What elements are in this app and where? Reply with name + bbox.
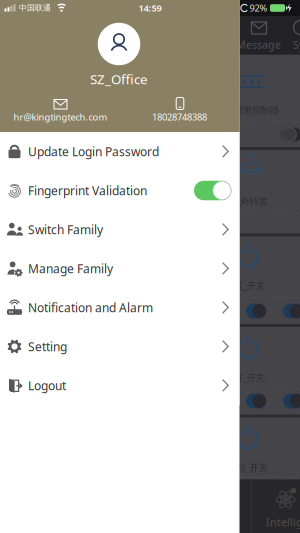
button[interactable]: Setting xyxy=(0,327,239,366)
staticText: Switch Family xyxy=(28,221,103,237)
staticText: Setting xyxy=(28,338,67,354)
button[interactable]: Switch Family xyxy=(0,210,239,249)
staticText: 14:59 xyxy=(138,2,161,14)
staticText: Logout xyxy=(28,377,66,393)
staticText: Update Login Password xyxy=(28,143,159,159)
staticText: SZ_Office xyxy=(90,70,148,88)
staticText: 中国联通 xyxy=(19,3,51,13)
staticText: Sys xyxy=(293,37,300,52)
button[interactable]: Notification and Alarm xyxy=(0,288,239,327)
staticText: 红外转发 xyxy=(231,196,267,207)
button[interactable]: Logout xyxy=(0,366,239,405)
staticText: Manage Family xyxy=(28,260,113,276)
staticText: Fingerprint Validation xyxy=(28,182,147,198)
staticText: 与_开关 xyxy=(236,461,267,474)
button[interactable]: Update Login Password xyxy=(0,132,239,171)
staticText: 92% xyxy=(249,2,267,14)
staticText: Message xyxy=(236,37,281,52)
staticText: Notification and Alarm xyxy=(28,299,153,315)
staticText: 灯_开关 xyxy=(234,371,265,384)
staticText: 灯_开关 xyxy=(234,279,265,292)
button[interactable]: Manage Family xyxy=(0,249,239,288)
button[interactable]: Close menu xyxy=(239,0,300,533)
staticText: 宽带控制器 xyxy=(234,105,279,116)
staticText: Intelligent xyxy=(266,515,300,529)
button[interactable]: Fingerprint Validation xyxy=(0,171,239,210)
staticText: hr@kingtingtech.com xyxy=(13,111,107,123)
staticText: 18028748388 xyxy=(152,111,207,123)
